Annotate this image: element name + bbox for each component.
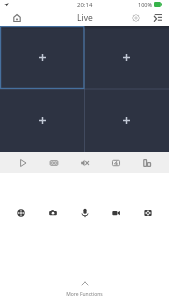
- button[interactable]: Fullscreen: [138, 203, 158, 223]
- button[interactable]: Channel list: [146, 9, 169, 26]
- button[interactable]: Camera channel: [84, 89, 169, 152]
- button[interactable]: Camera channel: [0, 26, 84, 89]
- staticText: More Functions: [66, 291, 103, 298]
- button[interactable]: Mute audio: [74, 152, 95, 173]
- button[interactable]: PTZ control: [11, 203, 31, 223]
- button[interactable]: Play: [12, 152, 33, 173]
- button[interactable]: Snapshot: [43, 203, 63, 223]
- button[interactable]: Microphone: [75, 203, 95, 223]
- button[interactable]: Split layout: [105, 152, 126, 173]
- button[interactable]: Settings: [125, 9, 146, 26]
- button[interactable]: Screen orientation: [136, 152, 157, 173]
- button[interactable]: Camera channel: [0, 89, 84, 152]
- button[interactable]: Stream quality: [43, 152, 64, 173]
- staticText: Live: [77, 12, 93, 24]
- button[interactable]: More Functions: [0, 282, 169, 300]
- staticText: 100%: [138, 1, 153, 8]
- staticText: 20:14: [77, 1, 93, 9]
- button[interactable]: Record video: [106, 203, 126, 223]
- button[interactable]: Camera channel: [84, 26, 169, 89]
- button[interactable]: Home: [0, 9, 34, 26]
